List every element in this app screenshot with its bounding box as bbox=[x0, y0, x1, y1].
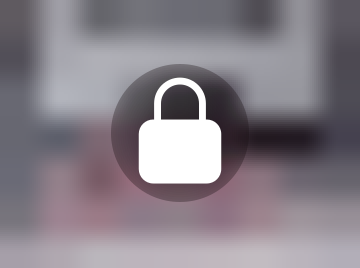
button[interactable]: Locked bbox=[0, 0, 360, 268]
